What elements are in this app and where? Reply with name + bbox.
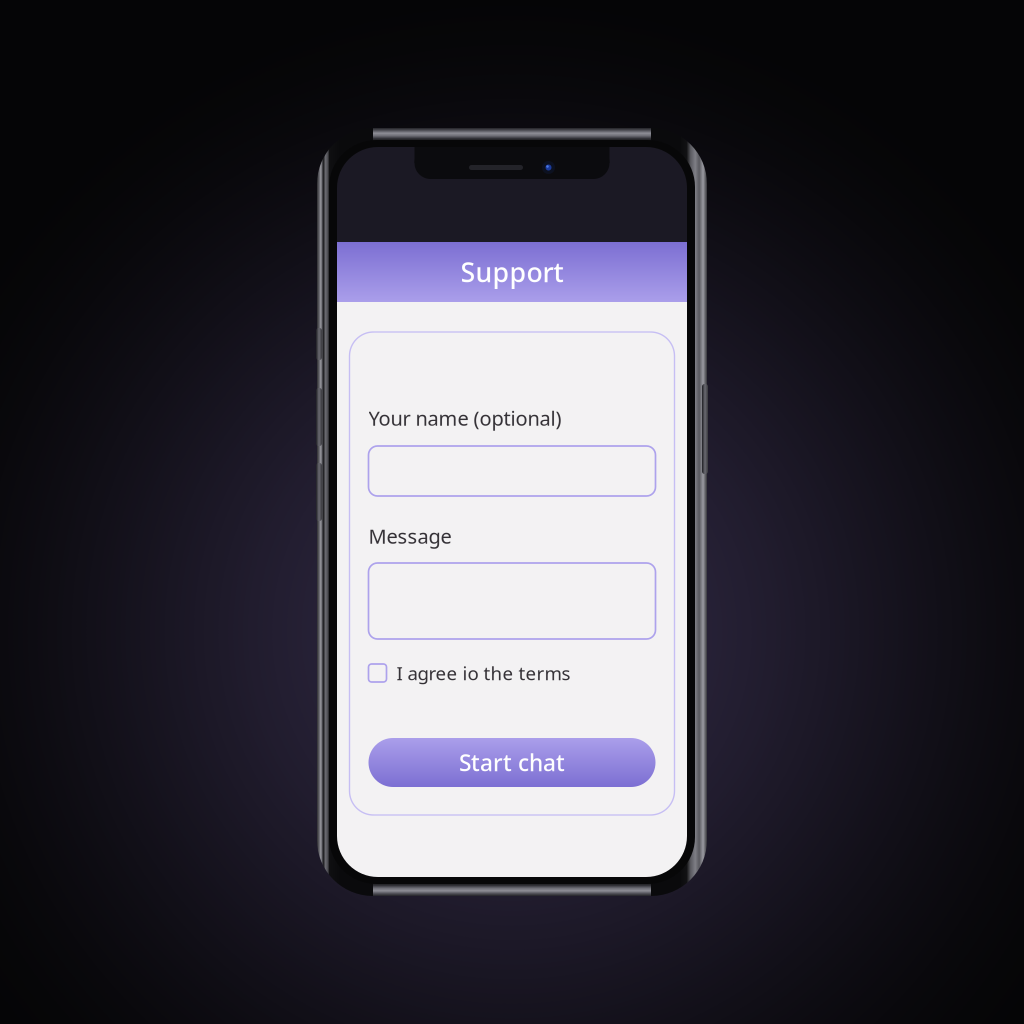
button[interactable]: I agree io the terms: [368, 660, 655, 686]
staticText: Your name (optional): [368, 405, 561, 431]
staticText: Message: [368, 523, 451, 549]
staticText: Support: [460, 254, 563, 290]
button[interactable]: Your name text field: [368, 446, 655, 496]
staticText: Start chat: [459, 747, 565, 777]
staticText: I agree io the terms: [396, 661, 570, 685]
button[interactable]: Start chat: [368, 738, 655, 787]
button[interactable]: Message text field: [368, 563, 655, 639]
